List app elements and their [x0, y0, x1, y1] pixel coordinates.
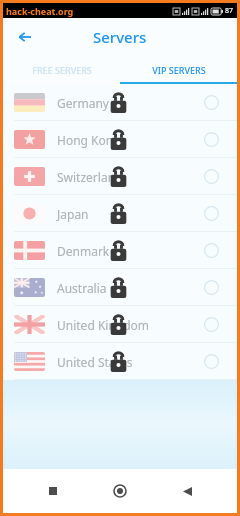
button[interactable]: Japan — [3, 195, 237, 232]
button[interactable]: Home — [103, 474, 137, 508]
button[interactable]: Switzerland — [3, 158, 237, 195]
button[interactable]: Hong Kong — [3, 121, 237, 158]
staticText: 87 — [225, 6, 234, 16]
staticText: Germany — [57, 95, 109, 111]
button[interactable]: VIP SERVERS — [120, 55, 237, 84]
staticText: Australia — [57, 280, 107, 296]
button[interactable]: FREE SERVERS — [3, 55, 120, 84]
button[interactable]: Back — [11, 23, 39, 51]
staticText: Japan — [57, 206, 89, 222]
button[interactable]: Denmark — [3, 232, 237, 269]
button[interactable]: Germany — [3, 84, 237, 121]
staticText: FREE SERVERS — [32, 64, 92, 76]
staticText: United States — [57, 354, 133, 370]
staticText: United Kingdom — [57, 317, 150, 333]
button[interactable]: United States — [3, 343, 237, 380]
staticText: VIP SERVERS — [152, 64, 206, 76]
staticText: Switzerland — [57, 169, 123, 185]
button[interactable]: Australia — [3, 269, 237, 306]
staticText: hack-cheat.org — [6, 5, 74, 17]
button[interactable]: Back — [170, 474, 204, 508]
staticText: Hong Kong — [57, 132, 121, 148]
staticText: Denmark — [57, 243, 110, 259]
button[interactable]: Recent apps — [36, 474, 70, 508]
button[interactable]: United Kingdom — [3, 306, 237, 343]
staticText: Servers — [93, 27, 147, 47]
